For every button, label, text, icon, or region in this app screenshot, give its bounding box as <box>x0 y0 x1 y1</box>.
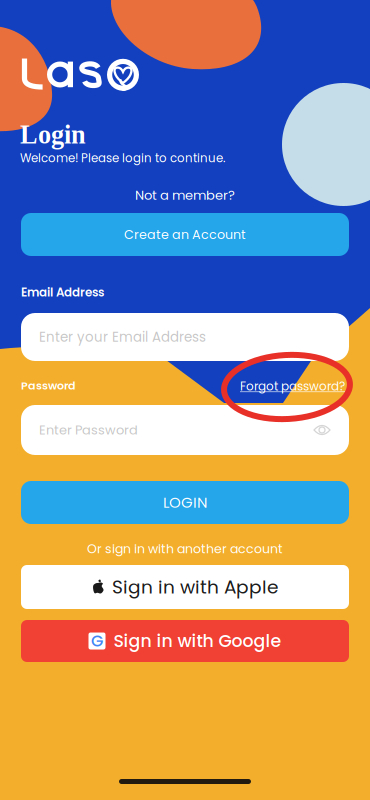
staticText: Enter your Email Address <box>39 328 206 346</box>
button[interactable]: Forgot password? <box>240 378 345 395</box>
staticText: Welcome! Please login to continue. <box>20 150 225 166</box>
staticText: Login <box>20 120 86 149</box>
staticText: Sign in with Google <box>113 629 281 653</box>
staticText: G <box>91 630 103 652</box>
staticText: Enter Password <box>39 421 138 439</box>
button[interactable]: Create an Account <box>21 213 349 256</box>
button[interactable]: Sign in with Apple <box>21 565 349 609</box>
staticText: Sign in with Apple <box>112 574 278 600</box>
staticText: Create an Account <box>124 226 246 243</box>
staticText: Or sign in with another account <box>87 540 283 557</box>
staticText: Email Address <box>21 284 104 301</box>
button[interactable]: LOGIN <box>21 481 349 524</box>
button[interactable]: G <box>21 620 349 662</box>
staticText: Password <box>21 378 76 393</box>
staticText: LOGIN <box>163 492 207 513</box>
staticText: Forgot password? <box>240 378 345 395</box>
staticText: Not a member? <box>135 186 235 204</box>
